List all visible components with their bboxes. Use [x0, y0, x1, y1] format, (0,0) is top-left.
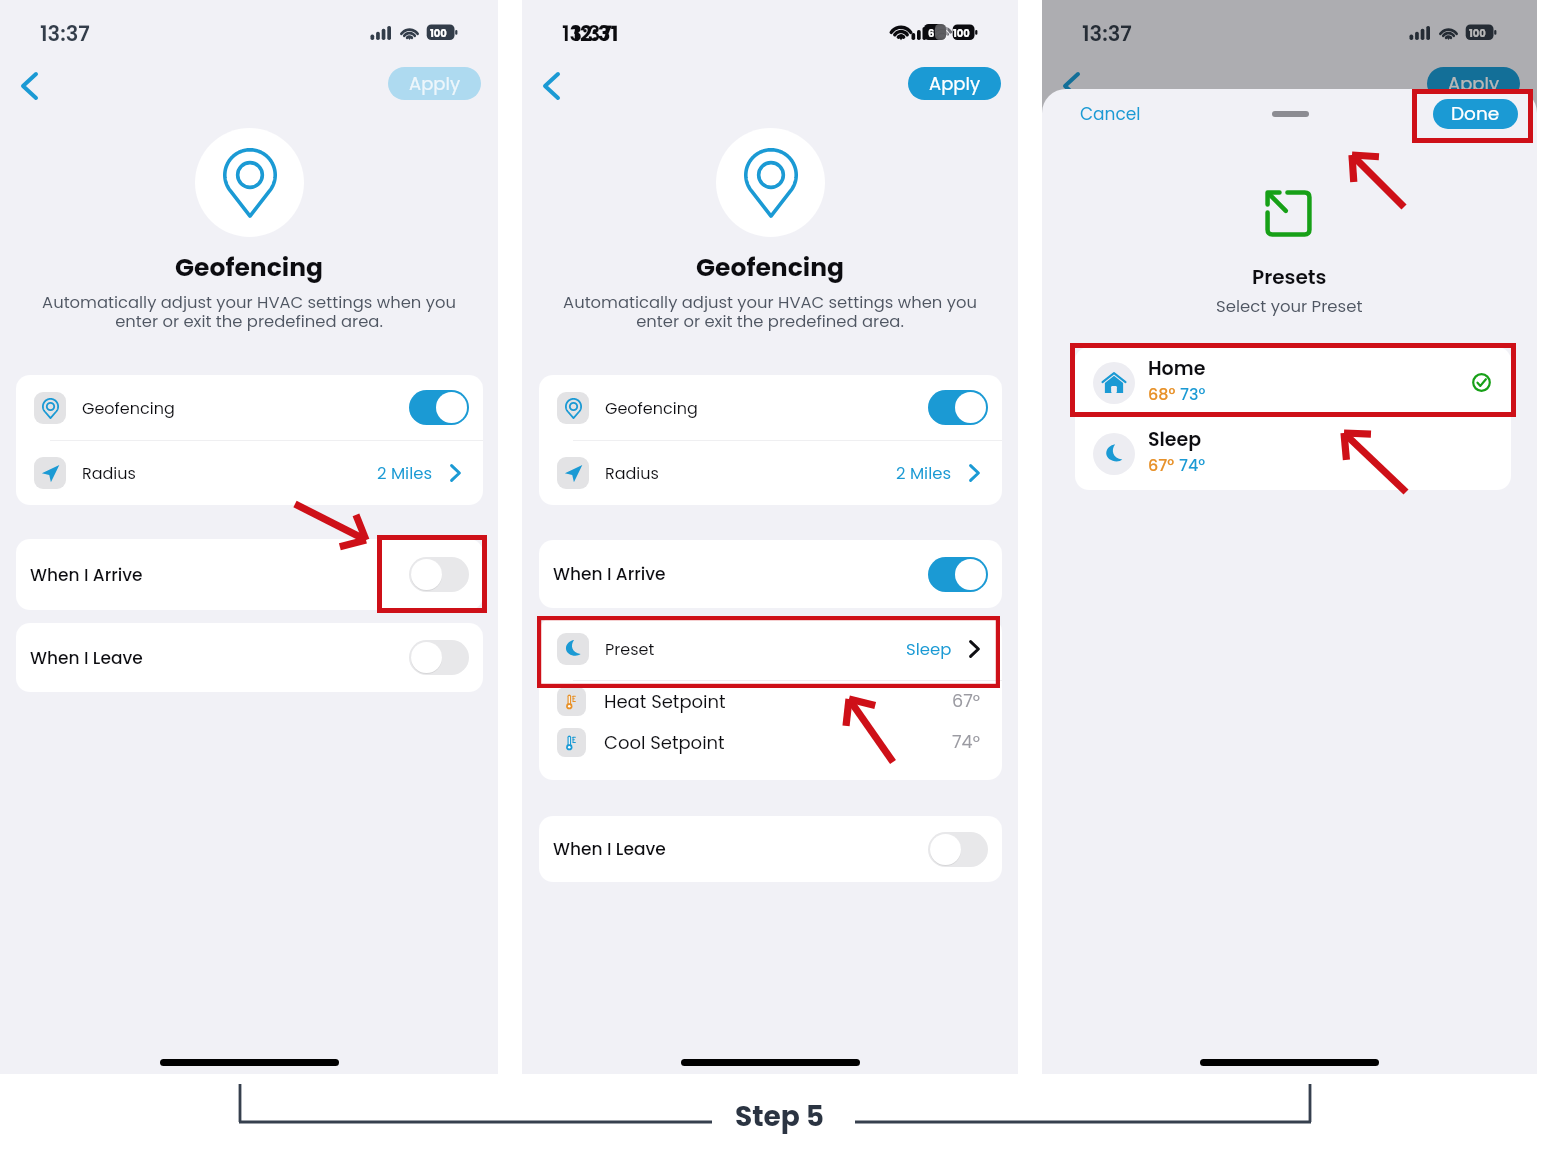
staticText: Radius [605, 462, 659, 484]
staticText: When I Leave [553, 837, 666, 861]
staticText: 73° [1180, 383, 1206, 405]
button[interactable]: Toggle on [409, 390, 469, 425]
button[interactable]: Toggle on [928, 390, 988, 425]
button[interactable]: Radius [16, 441, 483, 505]
button[interactable]: Geofencing [539, 375, 1002, 440]
staticText: 67° [952, 689, 980, 714]
staticText: Done [1451, 101, 1500, 127]
staticText: 6 [928, 26, 935, 40]
staticText: Heat Setpoint [604, 689, 726, 714]
staticText: When I Arrive [30, 563, 143, 587]
staticText: Geofencing [605, 397, 698, 419]
staticText: 13:37 [562, 19, 612, 48]
staticText: Geofencing [696, 250, 844, 285]
staticText: 13:37 [40, 19, 90, 48]
button[interactable]: Preset [539, 618, 1002, 680]
button[interactable]: Toggle off [409, 557, 469, 592]
staticText: Geofencing [82, 397, 175, 419]
staticText: 12:31 [572, 19, 619, 48]
button[interactable]: Geofencing [16, 375, 483, 440]
button[interactable]: Toggle on [928, 557, 988, 592]
button[interactable]: Toggle off [409, 640, 469, 675]
button[interactable]: Cancel [1080, 102, 1141, 126]
staticText: 100 [953, 26, 970, 40]
staticText: Presets [1252, 263, 1327, 291]
staticText: 67° [1148, 454, 1175, 476]
button[interactable]: Apply [1427, 67, 1520, 100]
button[interactable]: Done [1433, 99, 1518, 129]
staticText: 74° [1179, 454, 1206, 476]
staticText: 13:37 [1082, 19, 1132, 48]
button[interactable]: Back [531, 66, 571, 106]
staticText: 68° [1148, 383, 1176, 405]
staticText: 74° [952, 730, 980, 755]
button[interactable]: Apply [908, 67, 1001, 100]
button[interactable]: When I Leave [539, 816, 1002, 882]
staticText: Preset [605, 638, 655, 660]
staticText: Sleep [906, 638, 952, 661]
button[interactable]: When I Leave [16, 623, 483, 692]
staticText: Radius [82, 462, 136, 484]
button[interactable]: Toggle off [928, 832, 988, 867]
staticText: 2 Miles [377, 462, 433, 485]
staticText: Apply [1448, 71, 1500, 96]
button[interactable]: Apply [388, 67, 481, 100]
staticText: Home [1148, 355, 1206, 382]
button[interactable]: Back [9, 66, 49, 106]
staticText: Sleep [1148, 426, 1202, 453]
button[interactable]: When I Arrive [539, 540, 1002, 608]
staticText: Apply [929, 71, 981, 96]
staticText: Geofencing [175, 250, 323, 285]
button[interactable]: Home [1075, 347, 1511, 418]
staticText: When I Arrive [553, 562, 666, 586]
button[interactable]: Back [1051, 66, 1091, 106]
staticText: 100 [1469, 26, 1486, 40]
button[interactable]: Sleep [1075, 418, 1511, 490]
staticText: Select your Preset [1216, 295, 1363, 318]
staticText: Apply [409, 71, 461, 96]
button[interactable]: When I Arrive [16, 539, 483, 610]
staticText: Automatically adjust your HVAC settings … [42, 291, 456, 333]
staticText: 2 Miles [896, 462, 952, 485]
other: Selected [1472, 373, 1491, 392]
staticText: 100 [430, 26, 447, 40]
button[interactable]: Cool Setpoint [539, 722, 1002, 763]
button[interactable]: Heat Setpoint [539, 681, 1002, 722]
staticText: Step 5 [735, 1097, 824, 1136]
button[interactable]: Radius [539, 441, 1002, 505]
staticText: Automatically adjust your HVAC settings … [563, 291, 977, 333]
staticText: When I Leave [30, 646, 143, 670]
staticText: Cool Setpoint [604, 730, 725, 755]
